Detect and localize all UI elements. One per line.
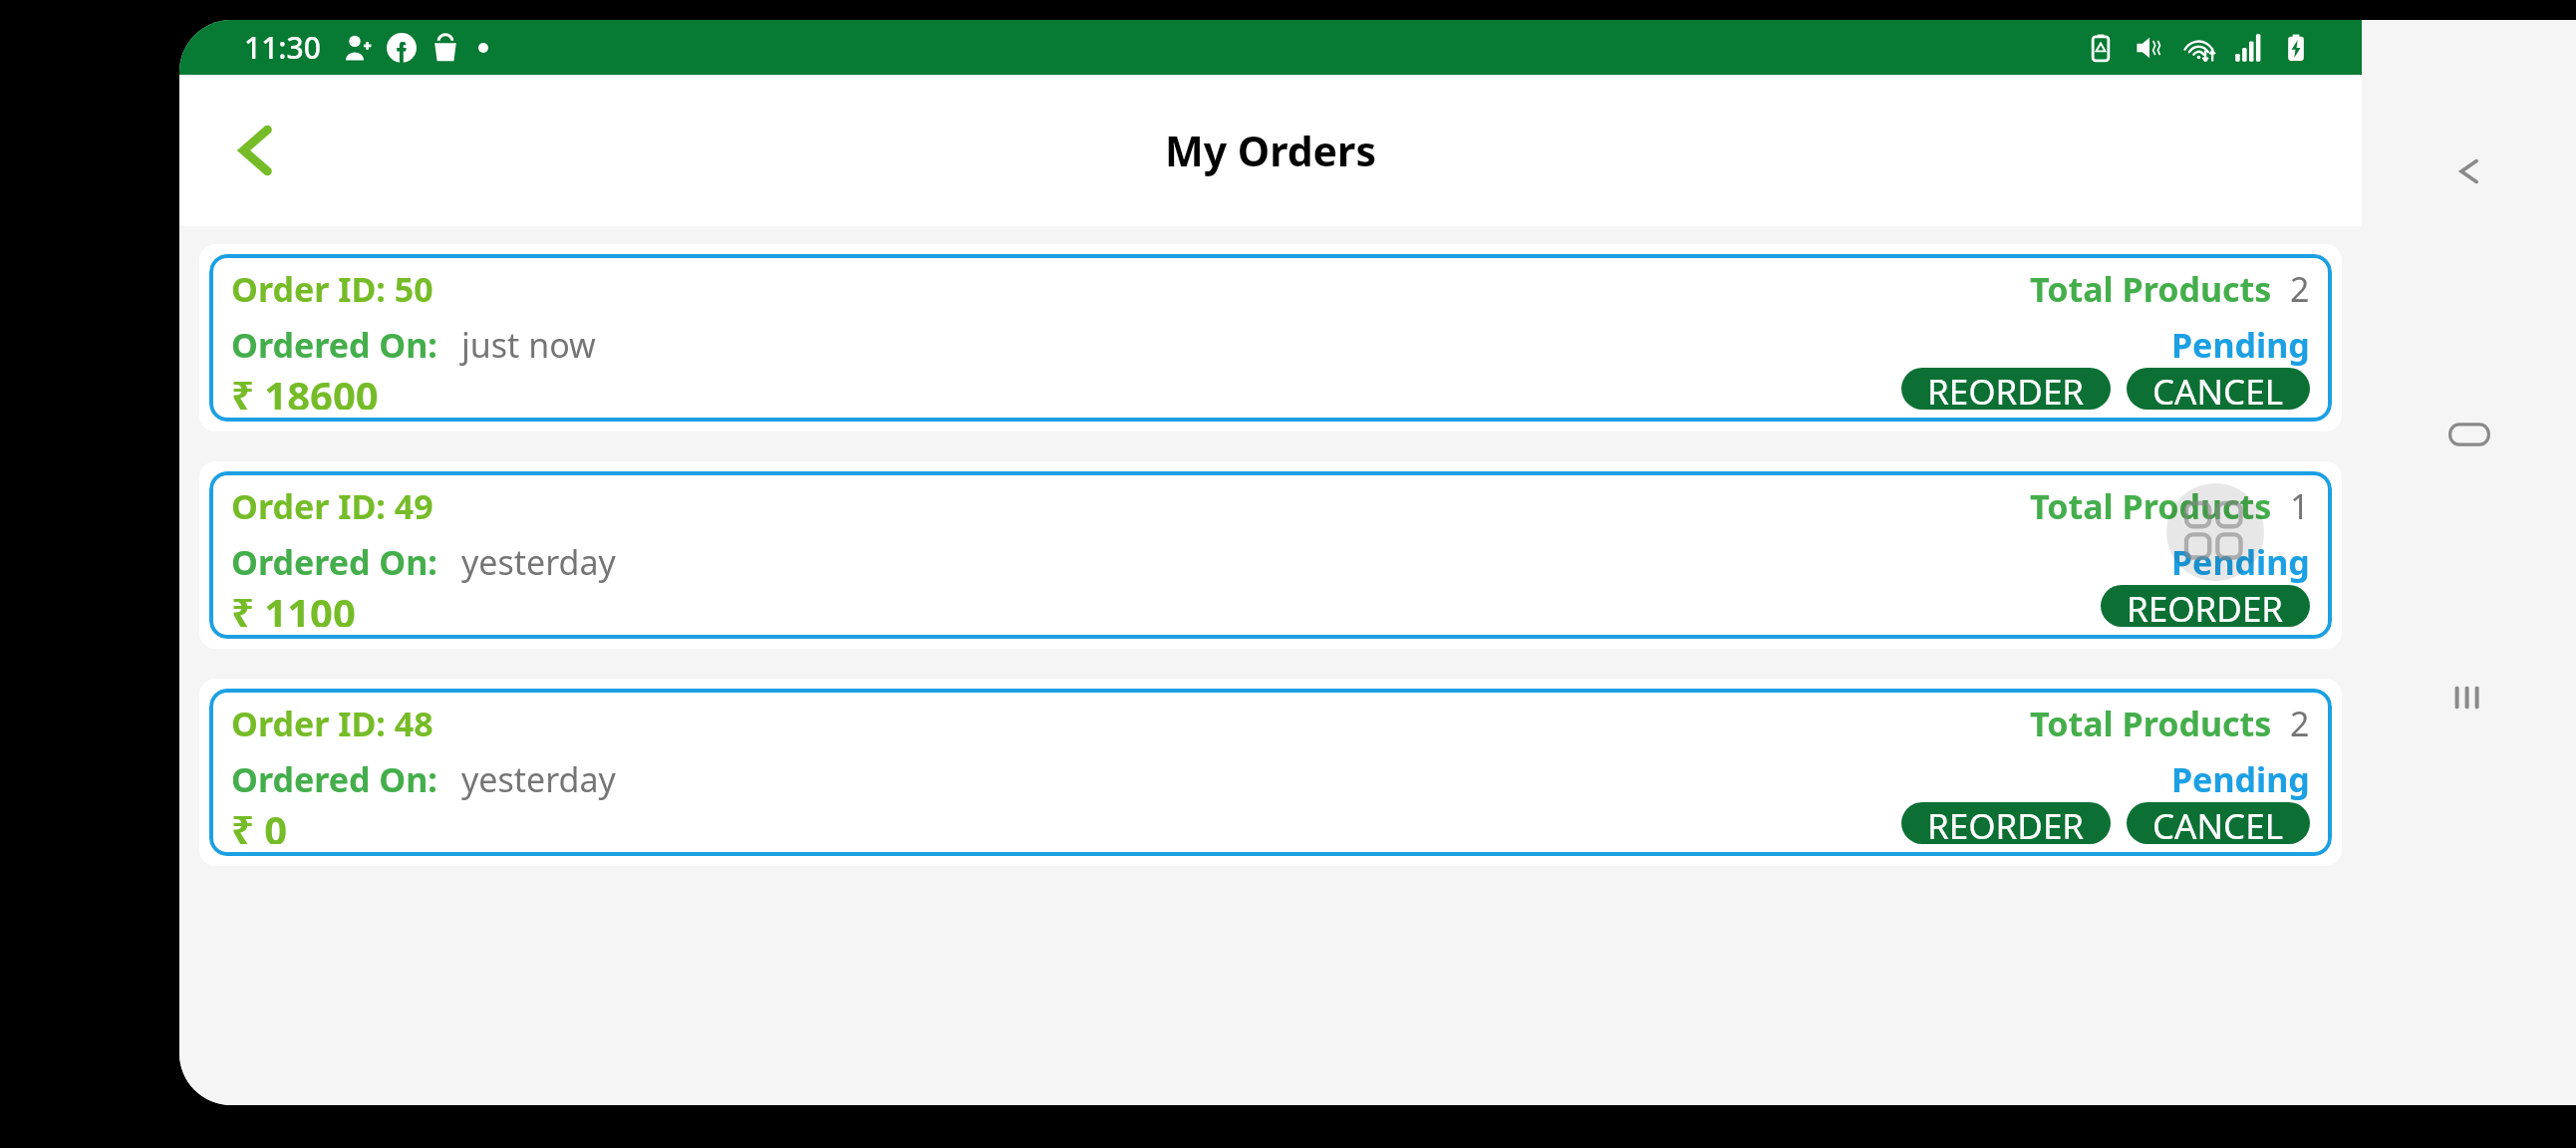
staticText: ₹ 0 xyxy=(231,802,288,844)
button[interactable]: Recent apps xyxy=(2428,656,2511,739)
button[interactable]: CANCEL xyxy=(2127,368,2310,410)
staticText: ₹ 18600 xyxy=(231,368,379,410)
staticText: Order ID: 48 xyxy=(231,701,433,746)
staticText: REORDER xyxy=(1927,802,2085,844)
button[interactable]: Order ID: 50 xyxy=(199,244,2342,431)
staticText: 2 xyxy=(2290,701,2310,746)
staticText: Pending xyxy=(2171,539,2310,585)
staticText: Ordered On: xyxy=(231,322,437,368)
button[interactable]: REORDER xyxy=(1901,368,2111,410)
staticText: ₹ 1100 xyxy=(231,585,356,627)
button[interactable]: REORDER xyxy=(2101,585,2310,627)
staticText: REORDER xyxy=(1927,368,2085,410)
staticText: Pending xyxy=(2171,756,2310,802)
staticText: My Orders xyxy=(1165,123,1376,178)
button[interactable]: REORDER xyxy=(1901,802,2111,844)
staticText: yesterday xyxy=(461,756,616,802)
button[interactable]: App shortcuts xyxy=(2166,483,2264,581)
staticText: Total Products xyxy=(2030,483,2272,529)
staticText: REORDER xyxy=(2127,585,2284,627)
button[interactable]: Order ID: 49 xyxy=(199,461,2342,649)
staticText: Ordered On: xyxy=(231,539,437,585)
button[interactable]: CANCEL xyxy=(2127,802,2310,844)
staticText: CANCEL xyxy=(2152,802,2284,844)
staticText: 1 xyxy=(2290,483,2310,529)
staticText: Order ID: 50 xyxy=(231,266,433,312)
button[interactable]: Back xyxy=(207,101,307,200)
button[interactable]: Order ID: 48 xyxy=(199,679,2342,866)
staticText: just now xyxy=(461,322,596,368)
staticText: Pending xyxy=(2171,322,2310,368)
button[interactable]: Back xyxy=(2428,130,2511,213)
staticText: CANCEL xyxy=(2152,368,2284,410)
staticText: 11:30 xyxy=(244,27,321,68)
button[interactable]: Home xyxy=(2428,393,2511,476)
staticText: 2 xyxy=(2290,266,2310,312)
staticText: Total Products xyxy=(2030,266,2272,312)
staticText: yesterday xyxy=(461,539,616,585)
staticText: Total Products xyxy=(2030,701,2272,746)
staticText: Order ID: 49 xyxy=(231,483,433,529)
staticText: Ordered On: xyxy=(231,756,437,802)
